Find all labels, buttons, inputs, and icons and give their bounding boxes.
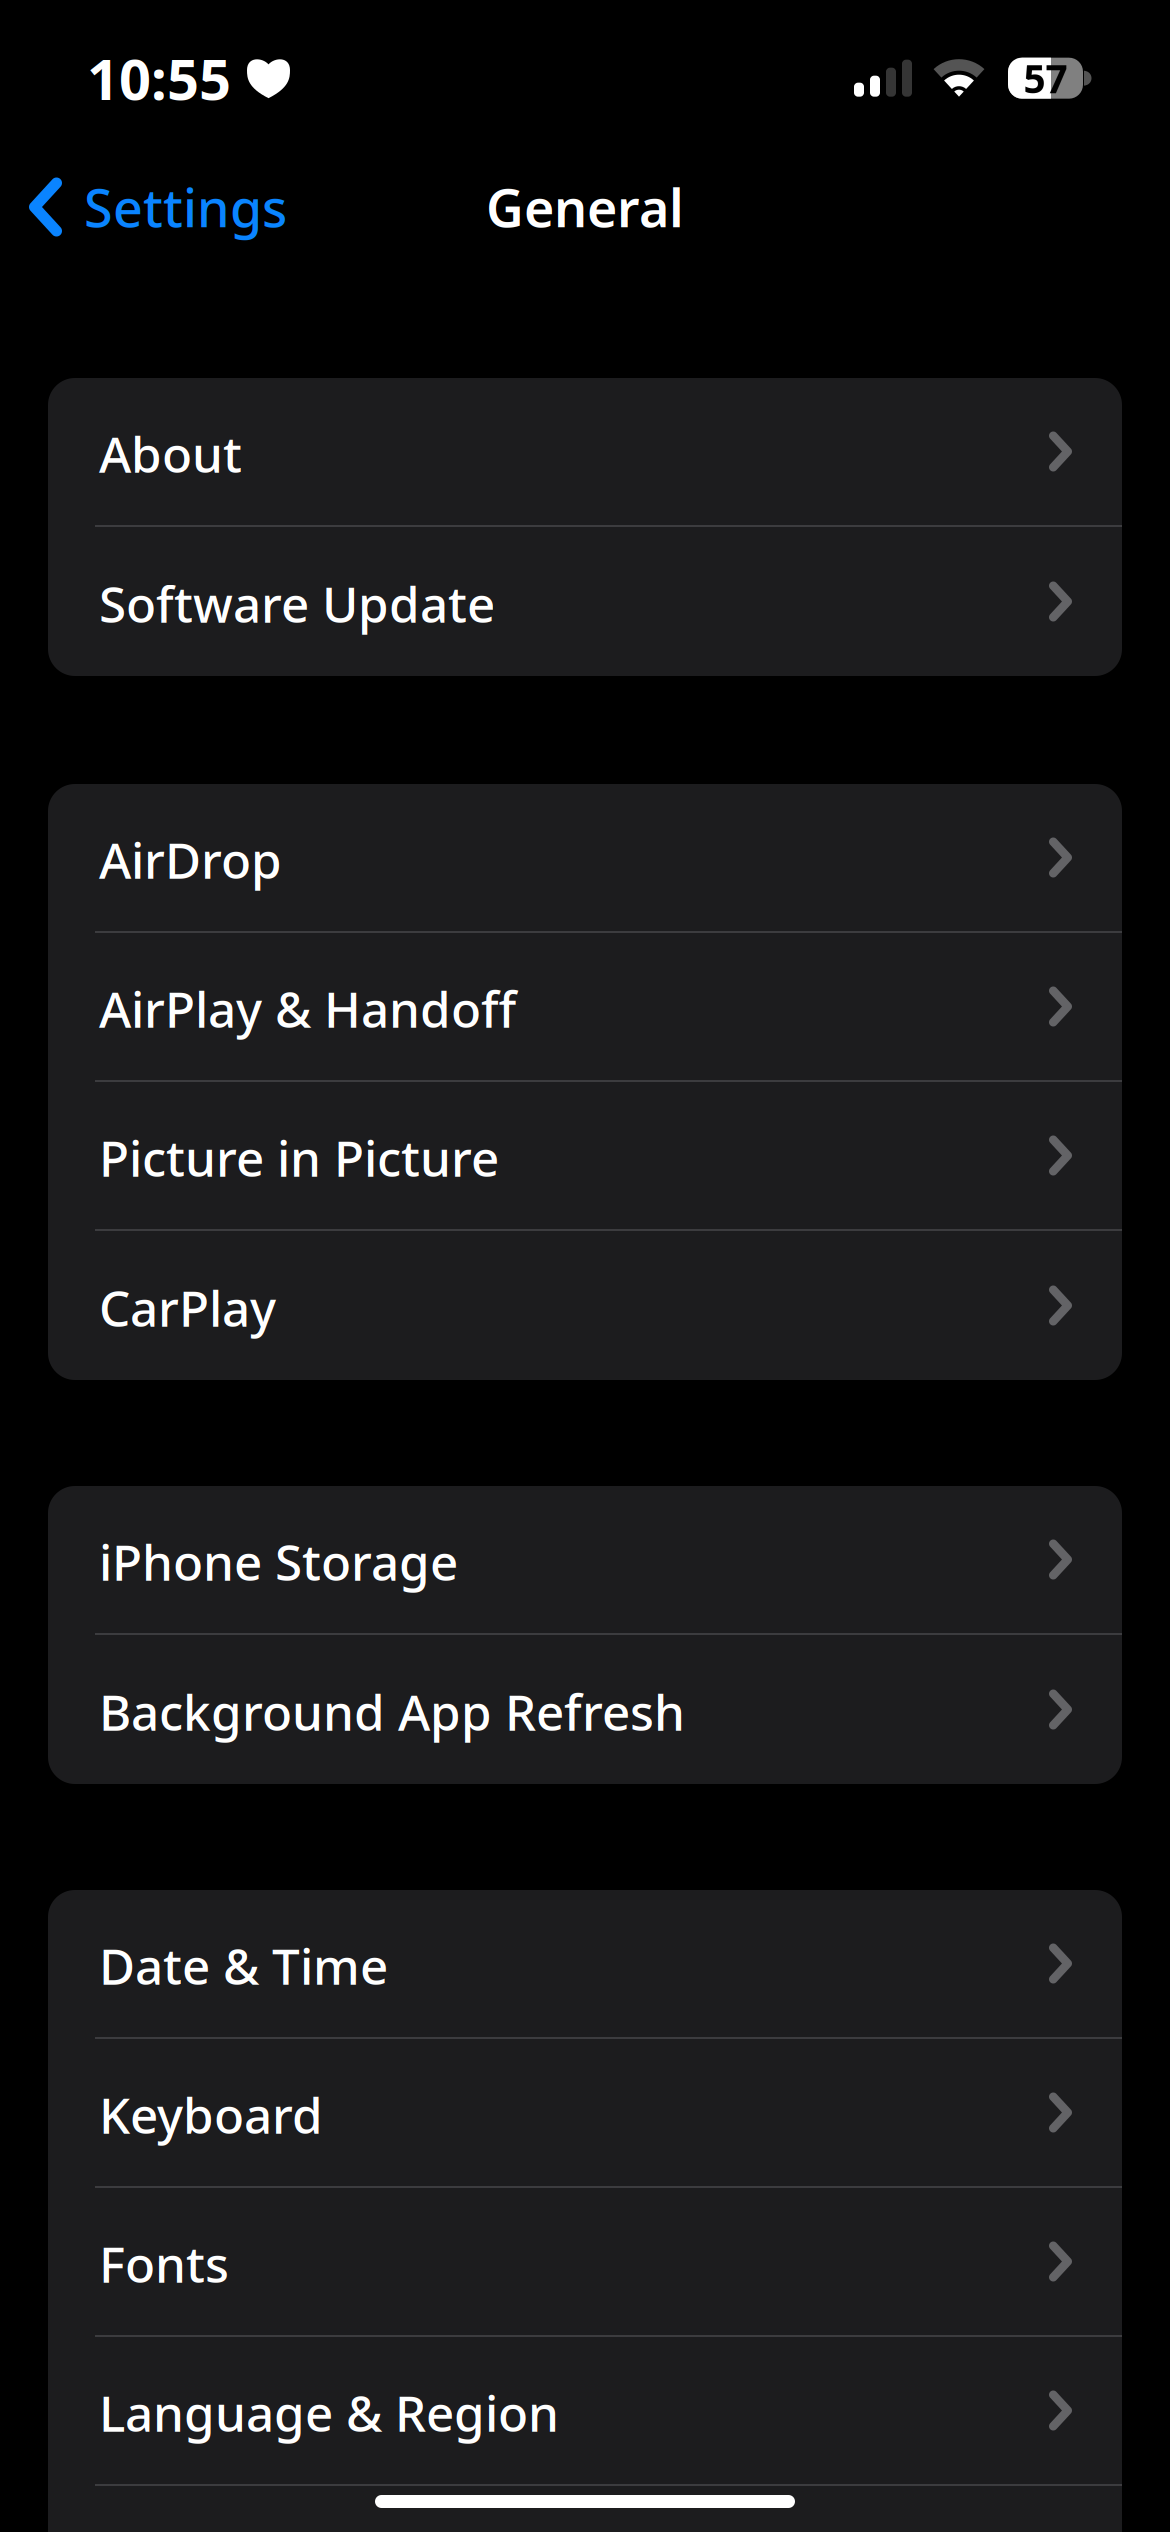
- staticText: Keyboard: [99, 2082, 323, 2147]
- button[interactable]: AirDrop: [48, 784, 1122, 931]
- button[interactable]: Software Update: [48, 527, 1122, 676]
- button[interactable]: CarPlay: [48, 1231, 1122, 1380]
- button[interactable]: Background App Refresh: [48, 1635, 1122, 1784]
- staticText: 57: [1023, 52, 1067, 104]
- staticText: Picture in Picture: [99, 1125, 499, 1190]
- button[interactable]: iPhone Storage: [48, 1486, 1122, 1633]
- button[interactable]: Settings: [0, 151, 420, 263]
- staticText: General: [486, 172, 684, 242]
- staticText: Software Update: [99, 571, 495, 636]
- staticText: 10:55: [87, 41, 231, 115]
- button[interactable]: About: [48, 378, 1122, 525]
- staticText: Background App Refresh: [99, 1679, 685, 1744]
- button[interactable]: Fonts: [48, 2188, 1122, 2335]
- staticText: Fonts: [99, 2231, 229, 2296]
- button[interactable]: Date & Time: [48, 1890, 1122, 2037]
- staticText: iPhone Storage: [99, 1529, 458, 1594]
- button[interactable]: Keyboard: [48, 2039, 1122, 2186]
- staticText: AirPlay & Handoff: [99, 976, 516, 1041]
- staticText: CarPlay: [99, 1275, 276, 1340]
- staticText: About: [99, 421, 242, 486]
- staticText: Language & Region: [99, 2380, 559, 2445]
- button[interactable]: Dictionary: [48, 2486, 1122, 2532]
- staticText: AirDrop: [99, 827, 282, 892]
- staticText: Settings: [84, 172, 287, 242]
- button[interactable]: AirPlay & Handoff: [48, 933, 1122, 1080]
- staticText: Date & Time: [99, 1933, 388, 1998]
- button[interactable]: Picture in Picture: [48, 1082, 1122, 1229]
- button[interactable]: Language & Region: [48, 2337, 1122, 2484]
